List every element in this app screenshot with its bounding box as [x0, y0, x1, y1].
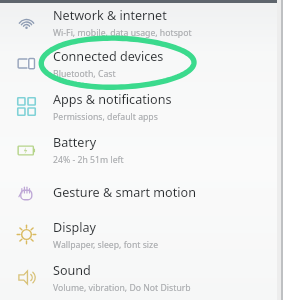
staticText: Bluetooth, Cast [53, 68, 116, 80]
button[interactable]: Sound [0, 256, 283, 299]
button[interactable]: Network & internet [0, 3, 283, 42]
staticText: 24% - 2h 51m left [53, 154, 124, 166]
staticText: Battery [53, 134, 97, 151]
staticText: Gesture & smart motion [53, 184, 196, 201]
button[interactable]: Connected devices [0, 42, 283, 85]
button[interactable]: Battery [0, 128, 283, 172]
staticText: Volume, vibration, Do Not Disturb [53, 282, 191, 294]
button[interactable]: Display [0, 213, 283, 256]
staticText: Connected devices [53, 48, 164, 65]
button[interactable]: Gesture & smart motion [0, 172, 283, 213]
staticText: Apps & notifications [53, 91, 172, 108]
staticText: Sound [53, 262, 91, 279]
staticText: Network & internet [53, 7, 167, 24]
staticText: Wi-Fi, mobile, data usage, hotspot [53, 27, 192, 39]
button[interactable]: Apps & notifications [0, 85, 283, 128]
staticText: Wallpaper, sleep, font size [53, 239, 159, 251]
staticText: Permissions, default apps [53, 111, 158, 123]
staticText: Display [53, 219, 96, 236]
